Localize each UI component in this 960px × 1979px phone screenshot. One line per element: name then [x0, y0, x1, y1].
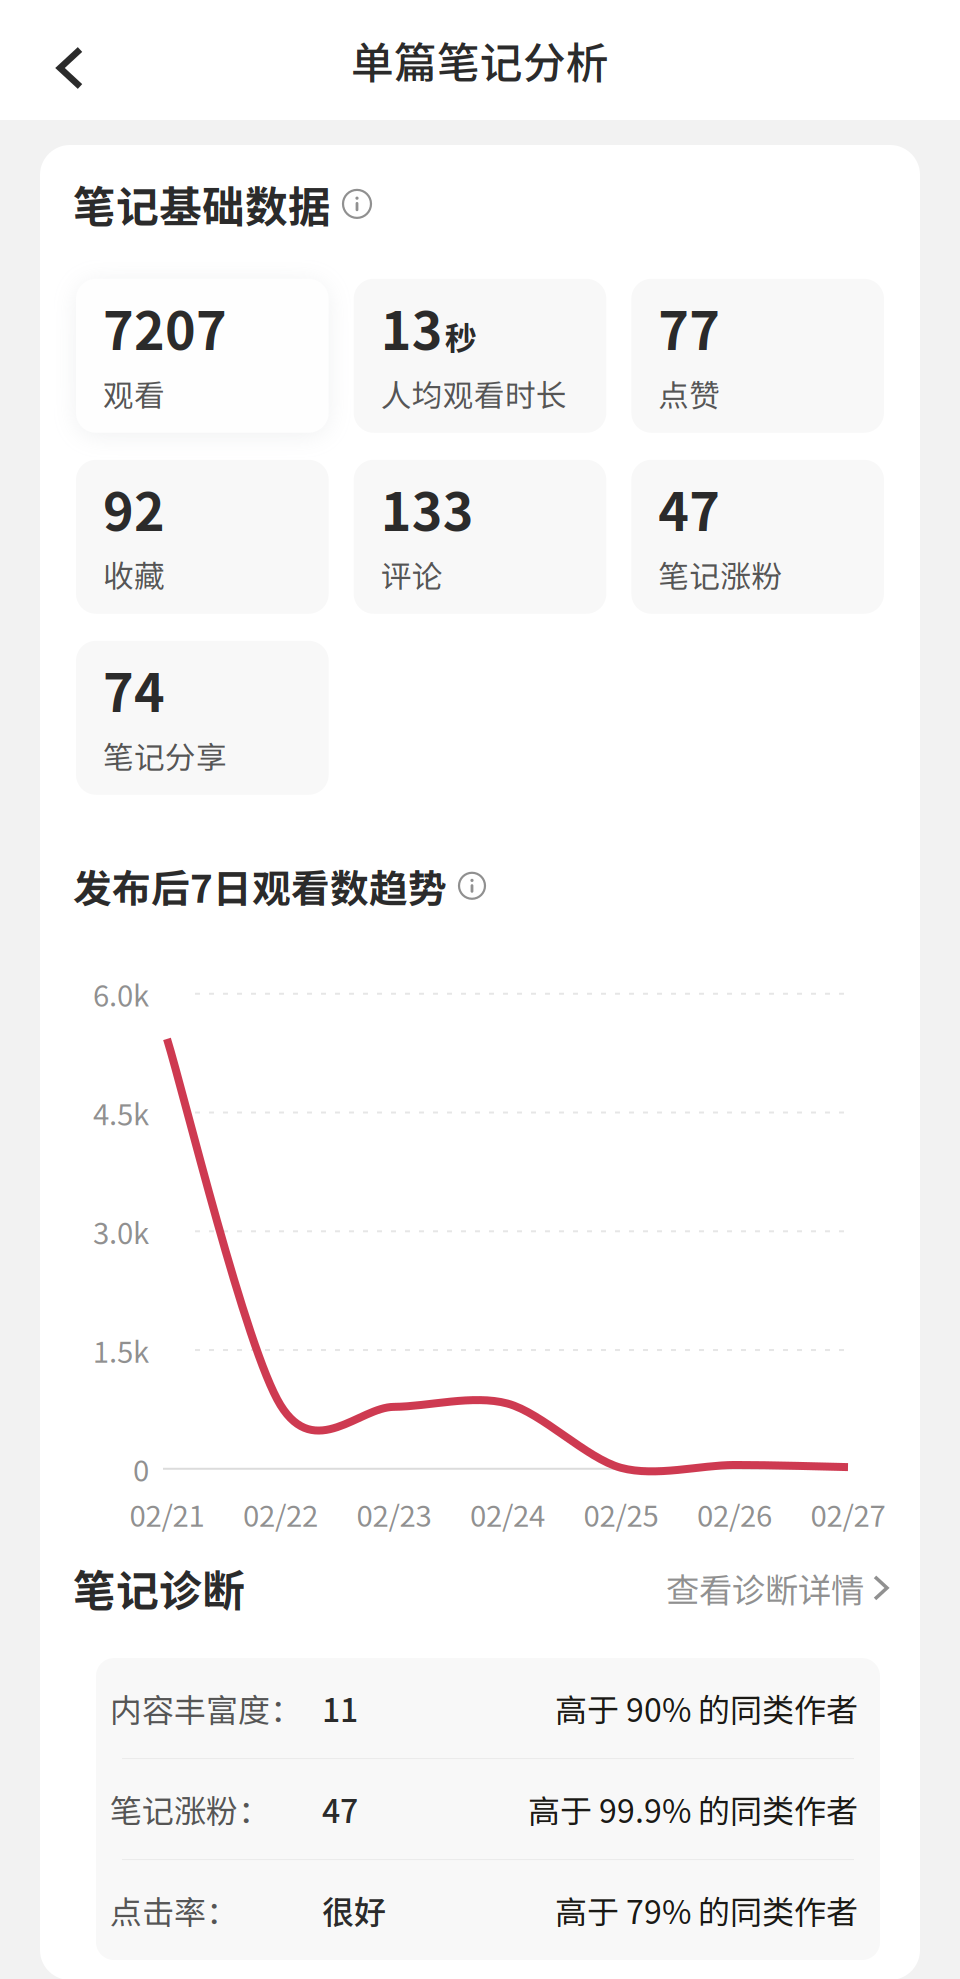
staticText: 02/22: [243, 1493, 318, 1535]
button[interactable]: 查看诊断详情: [666, 1554, 887, 1622]
staticText: 评论: [381, 552, 443, 596]
staticText: 单篇笔记分析: [351, 29, 609, 91]
staticText: 笔记诊断: [73, 1557, 245, 1619]
staticText: 02/24: [470, 1493, 545, 1535]
staticText: 92: [103, 471, 165, 546]
staticText: 笔记涨粉: [658, 552, 782, 596]
staticText: 02/21: [129, 1493, 204, 1535]
staticText: 点击率：: [110, 1887, 238, 1933]
staticText: 高于 99.9% 的同类作者: [528, 1786, 858, 1832]
staticText: 很好: [322, 1887, 386, 1933]
staticText: 74: [103, 652, 165, 727]
staticText: 高于 90% 的同类作者: [555, 1685, 858, 1731]
staticText: 6.0k: [93, 972, 149, 1015]
staticText: 内容丰富度：: [110, 1685, 302, 1731]
staticText: 点赞: [658, 371, 720, 415]
staticText: 133: [381, 471, 474, 546]
staticText: 11: [322, 1685, 358, 1731]
staticText: 7207: [103, 290, 227, 365]
staticText: 47: [322, 1786, 358, 1832]
staticText: 1.5k: [93, 1329, 149, 1371]
staticText: 笔记分享: [103, 733, 227, 777]
staticText: 02/23: [356, 1493, 431, 1535]
staticText: 77: [658, 290, 720, 365]
staticText: 47: [658, 471, 720, 546]
staticText: 3.0k: [93, 1210, 149, 1252]
staticText: 13: [381, 290, 443, 365]
staticText: 高于 79% 的同类作者: [555, 1887, 858, 1933]
staticText: 秒: [445, 313, 477, 359]
staticText: 人均观看时长: [381, 371, 567, 415]
staticText: 笔记涨粉：: [110, 1786, 270, 1832]
staticText: 发布后7日观看数趋势: [73, 858, 447, 914]
staticText: 收藏: [103, 552, 165, 596]
staticText: 查看诊断详情: [666, 1564, 864, 1612]
staticText: 笔记基础数据: [73, 173, 331, 235]
staticText: 0: [133, 1447, 149, 1490]
staticText: 02/26: [697, 1493, 772, 1535]
staticText: 02/27: [810, 1493, 885, 1535]
button[interactable]: Back: [0, 11, 124, 108]
staticText: 4.5k: [93, 1091, 149, 1134]
staticText: 02/25: [583, 1493, 658, 1535]
staticText: 观看: [103, 371, 165, 415]
